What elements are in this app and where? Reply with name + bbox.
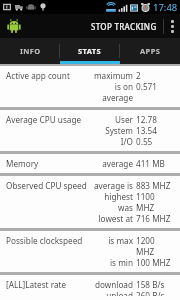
staticText: Memory bbox=[6, 158, 87, 169]
staticText: 158 B/s bbox=[136, 279, 174, 290]
staticText: STOP TRACKING bbox=[91, 21, 157, 32]
staticText: 1100 MHZ bbox=[136, 191, 174, 213]
button[interactable]: STOP TRACKING bbox=[85, 14, 163, 38]
staticText: STATS bbox=[78, 46, 102, 56]
button[interactable]: [ALL]Latest rate bbox=[0, 275, 180, 300]
staticText: Possible clockspeed bbox=[6, 235, 87, 246]
staticText: 716 MHZ bbox=[136, 213, 174, 224]
staticText: 260 B/s bbox=[136, 290, 174, 296]
button[interactable]: More options bbox=[164, 14, 180, 38]
staticText: User bbox=[89, 114, 133, 125]
staticText: is max bbox=[89, 235, 133, 246]
button[interactable]: STATS bbox=[60, 38, 120, 64]
button[interactable]: Active app count bbox=[0, 66, 180, 107]
staticText: [ALL]Latest rate bbox=[6, 279, 87, 290]
staticText: I/O bbox=[89, 136, 133, 147]
staticText: highest was bbox=[89, 191, 133, 213]
staticText: average is bbox=[89, 180, 133, 191]
button[interactable]: Memory bbox=[0, 154, 180, 173]
staticText: 1200 MHZ bbox=[136, 235, 174, 257]
staticText: upload bbox=[89, 290, 133, 296]
button[interactable]: Observed CPU speed bbox=[0, 176, 180, 228]
staticText: Observed CPU speed bbox=[6, 180, 87, 191]
staticText: 12.78 bbox=[136, 114, 174, 125]
staticText: 2 bbox=[136, 70, 174, 81]
staticText: 411 MB bbox=[136, 158, 174, 169]
staticText: 13.54 bbox=[136, 125, 174, 136]
staticText: 100 MHZ bbox=[136, 257, 174, 268]
staticText: Active app count bbox=[6, 70, 87, 81]
staticText: download bbox=[89, 279, 133, 290]
button[interactable]: INFO bbox=[0, 38, 60, 64]
staticText: 0.571 bbox=[136, 81, 174, 92]
button[interactable]: App icon bbox=[5, 17, 23, 35]
staticText: System bbox=[89, 125, 133, 136]
staticText: APPS bbox=[140, 46, 161, 56]
staticText: 0.55 bbox=[136, 136, 174, 147]
staticText: Average CPU usage bbox=[6, 114, 87, 125]
staticText: maximum bbox=[89, 70, 133, 81]
staticText: 883 MHZ bbox=[136, 180, 174, 191]
button[interactable]: APPS bbox=[120, 38, 180, 64]
staticText: average bbox=[89, 158, 133, 169]
button[interactable]: Average CPU usage bbox=[0, 110, 180, 151]
button[interactable]: Possible clockspeed bbox=[0, 231, 180, 272]
staticText: is on average bbox=[89, 81, 133, 103]
staticText: is min bbox=[89, 257, 133, 268]
staticText: INFO bbox=[20, 46, 41, 56]
staticText: lowest at bbox=[89, 213, 133, 224]
staticText: 17:48 bbox=[153, 1, 178, 14]
